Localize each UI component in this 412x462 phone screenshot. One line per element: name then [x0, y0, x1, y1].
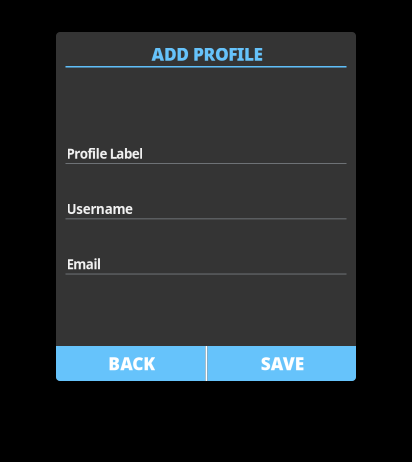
staticText: BACK	[108, 352, 155, 375]
button[interactable]: Username	[65, 203, 346, 229]
staticText: Email	[66, 255, 101, 273]
staticText: SAVE	[261, 352, 305, 375]
staticText: Username	[66, 200, 133, 218]
button[interactable]: SAVE	[207, 346, 356, 381]
staticText: ADD PROFILE	[151, 42, 263, 65]
staticText: Profile Label	[66, 145, 143, 162]
button[interactable]: Profile Label	[65, 148, 346, 174]
button[interactable]: Email	[65, 258, 346, 284]
button[interactable]: BACK	[56, 346, 205, 381]
